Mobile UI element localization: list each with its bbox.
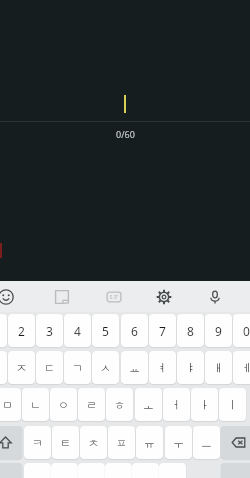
staticText: ㅑ [185,361,196,375]
staticText: 4 [74,323,81,339]
button[interactable]: 0 [233,314,250,347]
staticText: 0/60 [116,128,135,140]
button[interactable]: ㄷ [36,351,63,384]
button[interactable]: ㅗ [135,388,162,421]
button[interactable]: ㅁ [0,388,21,421]
button[interactable]: Key 5 [132,463,159,478]
button[interactable]: ㅓ [163,388,190,421]
staticText: 6 [131,323,138,339]
button[interactable]: ㅍ [108,426,135,459]
button[interactable]: ㅔ [233,351,250,384]
staticText: ㅐ [213,361,224,375]
button[interactable]: 8 [177,314,204,347]
staticText: ㅡ [201,436,212,450]
staticText: ㅇ [58,398,69,412]
staticText: ㄱ [72,361,83,375]
button[interactable]: 3 [36,314,63,347]
button[interactable]: Keyboard settings [152,285,176,309]
staticText: 0 [243,323,250,339]
button[interactable]: 9 [205,314,232,347]
button[interactable]: Backspace [221,426,250,459]
button[interactable]: ㅣ [219,388,246,421]
button[interactable]: ㅎ [106,388,133,421]
button[interactable]: Key 6 [159,463,186,478]
button[interactable]: Key 3 [78,463,105,478]
button[interactable]: ㅋ [24,426,51,459]
button[interactable]: ㅅ [92,351,119,384]
button[interactable]: Key 4 [105,463,132,478]
staticText: ㅊ [88,436,99,450]
staticText: 9 [215,323,222,339]
staticText: ㅁ [2,398,13,412]
button[interactable]: 6 [121,314,148,347]
staticText: ㅋ [32,436,43,450]
button[interactable]: ㅡ [193,426,220,459]
staticText: ㅗ [143,398,154,412]
button[interactable]: 2 [8,314,35,347]
button[interactable]: ㄱ [64,351,91,384]
button[interactable]: ㄹ [78,388,105,421]
button[interactable]: ㅇ [50,388,77,421]
button[interactable]: ㅂ [0,351,7,384]
staticText: ㅌ [60,436,71,450]
button[interactable]: Key 2 [51,463,78,478]
staticText: 2 [18,323,25,339]
button[interactable]: Emoji [0,285,18,309]
button[interactable]: ㅌ [52,426,79,459]
button[interactable]: GIF [102,285,126,309]
staticText: ㄴ [30,398,41,412]
button[interactable]: ㄴ [22,388,49,421]
staticText: ㅜ [173,436,184,450]
button[interactable]: ㅛ [121,351,148,384]
staticText: ㅏ [199,398,210,412]
button[interactable]: ㅐ [205,351,232,384]
staticText: ㅅ [100,361,111,375]
staticText: 5 [102,323,109,339]
staticText: ㅣ [227,398,238,412]
button[interactable]: ㅜ [165,426,192,459]
staticText: ㄹ [86,398,97,412]
button[interactable]: 1 [0,314,7,347]
button[interactable]: ㅠ [136,426,163,459]
button[interactable]: Stickers [50,285,74,309]
button[interactable]: 7 [149,314,176,347]
button[interactable]: Key 1 [24,463,51,478]
staticText: ㄷ [44,361,55,375]
staticText: 8 [187,323,194,339]
button[interactable]: Voice input [203,285,227,309]
button[interactable]: 5 [92,314,119,347]
staticText: ㅔ [241,361,250,375]
staticText: ㅎ [114,398,125,412]
staticText: ㅍ [116,436,127,450]
button[interactable]: Shift [0,426,22,459]
button[interactable]: ㅈ [8,351,35,384]
staticText: 3 [46,323,53,339]
button[interactable]: ㅊ [80,426,107,459]
staticText: ㅈ [16,361,27,375]
button[interactable]: ㅑ [177,351,204,384]
staticText: ㅠ [144,436,155,450]
staticText: ㅓ [171,398,182,412]
button[interactable]: 4 [64,314,91,347]
button[interactable]: ㅏ [191,388,218,421]
staticText: 7 [159,323,166,339]
staticText: ㅛ [129,361,140,375]
staticText: ㅕ [157,361,168,375]
button[interactable]: ㅕ [149,351,176,384]
